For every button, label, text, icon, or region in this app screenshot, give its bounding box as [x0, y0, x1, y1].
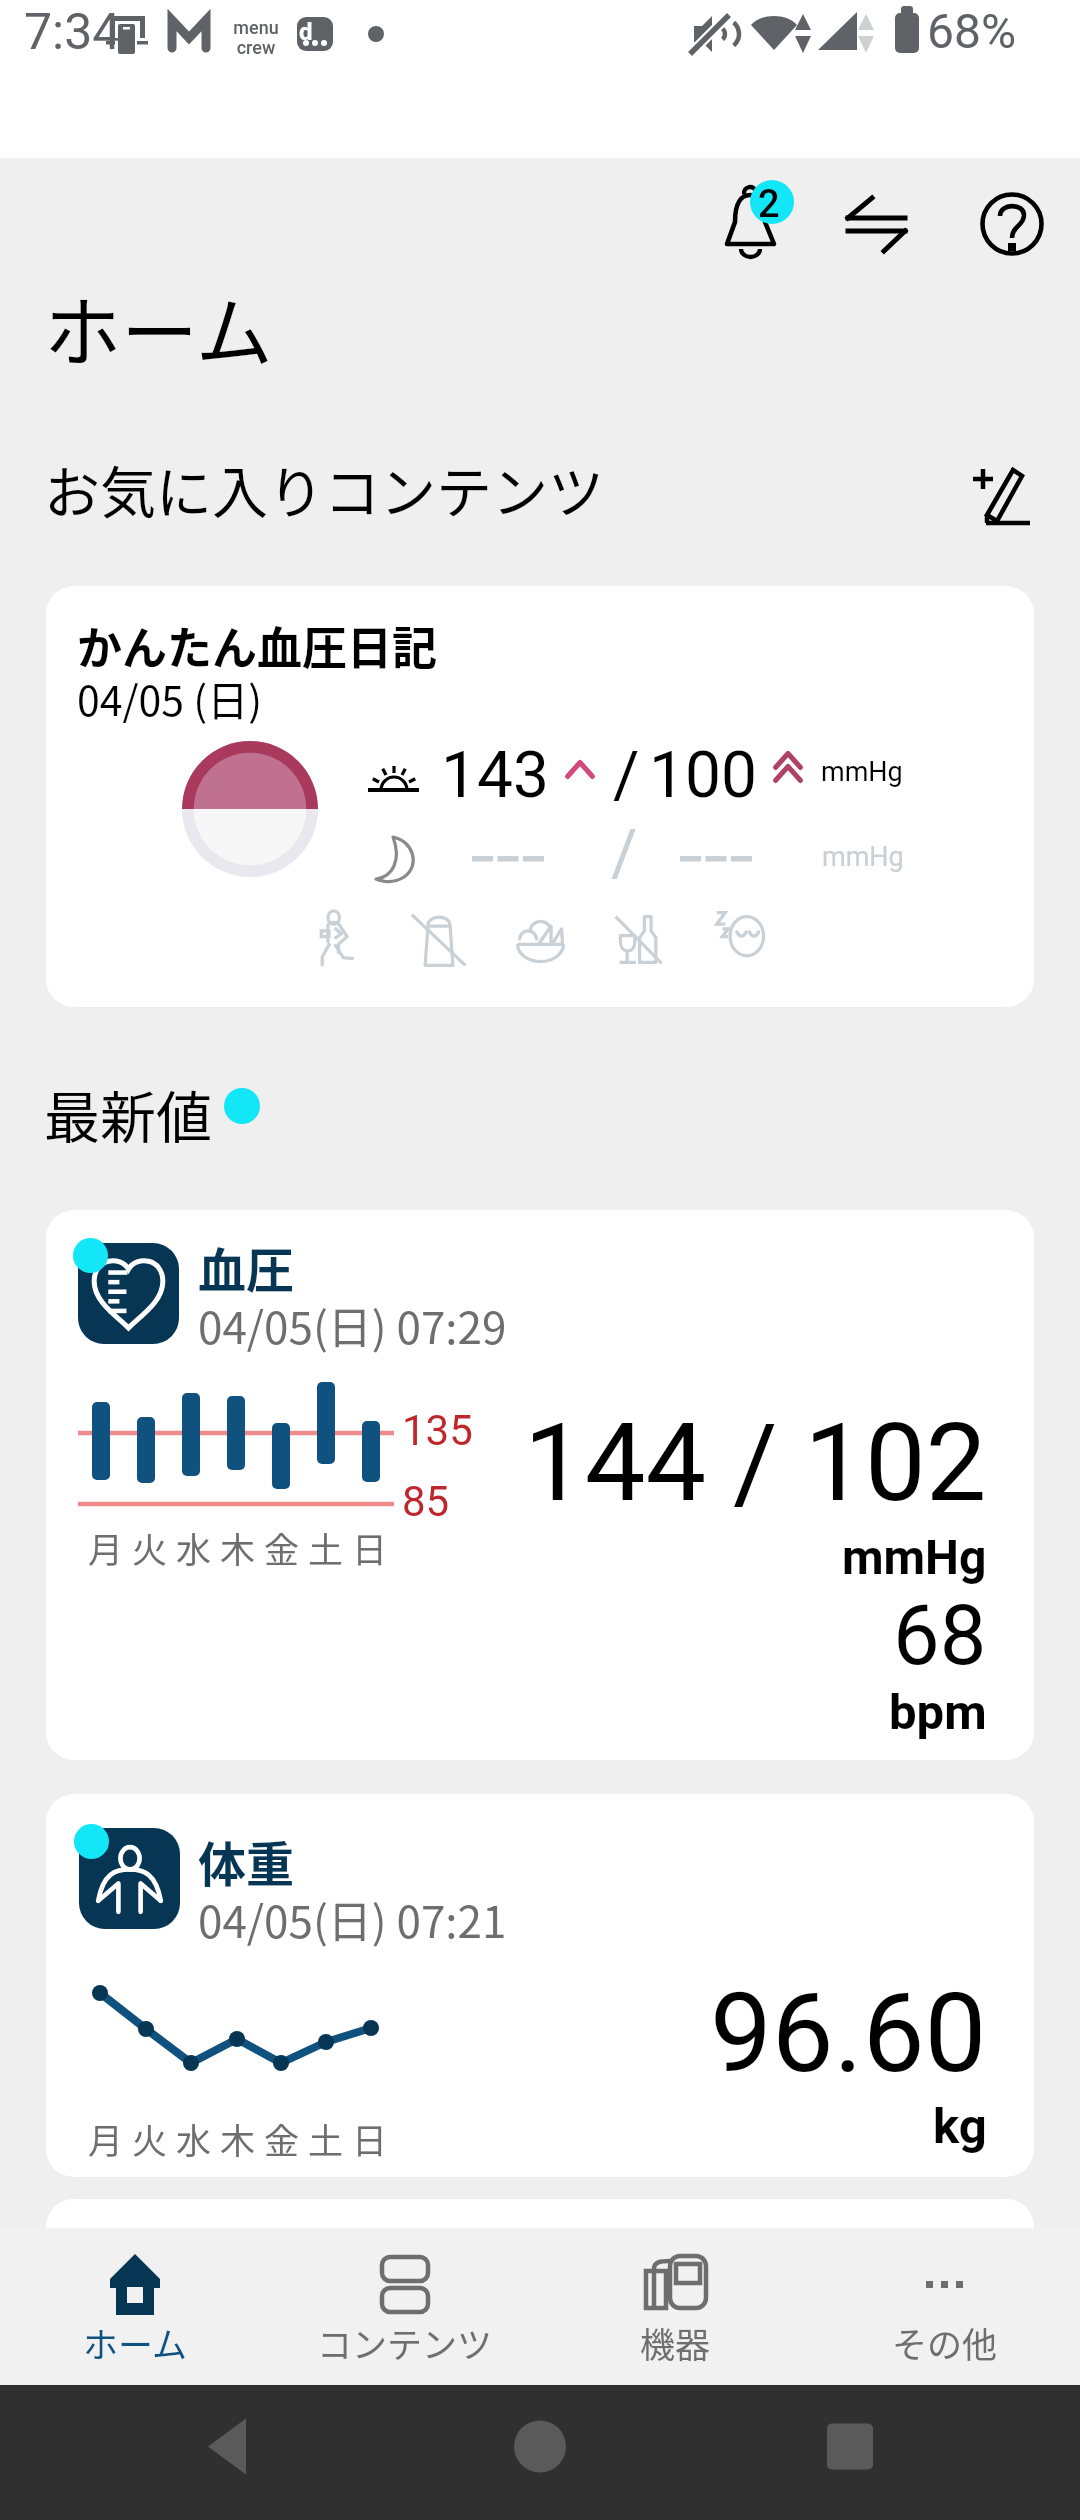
staticText: /	[613, 738, 640, 813]
staticText: 04/05 (日)	[77, 668, 262, 727]
staticText: 月	[88, 1522, 124, 1573]
button[interactable]: 機器	[540, 2228, 810, 2385]
button[interactable]: Sync	[822, 170, 930, 278]
staticText: 水	[176, 2113, 212, 2164]
staticText: 04/05(日) 07:21	[198, 1887, 507, 1951]
button[interactable]: その他	[810, 2228, 1080, 2385]
staticText: 金	[264, 2113, 300, 2164]
staticText: menu crew	[233, 17, 279, 58]
button[interactable]: Help	[958, 170, 1066, 278]
staticText: 2	[758, 182, 780, 227]
staticText: d	[299, 18, 313, 46]
button[interactable]: コンテンツ	[270, 2228, 540, 2385]
button[interactable]: かんたん血圧日記	[46, 586, 1034, 1007]
staticText: 木	[220, 2113, 256, 2164]
staticText: 火	[132, 2113, 168, 2164]
staticText: ホーム	[83, 2317, 187, 2368]
staticText: 144 / 102	[524, 1400, 987, 1527]
staticText: mmHg	[822, 841, 904, 873]
staticText: 土	[308, 1522, 344, 1573]
button[interactable]: ホーム	[0, 2228, 270, 2385]
staticText: 土	[308, 2113, 344, 2164]
staticText: 火	[132, 1522, 168, 1573]
staticText: bpm	[889, 1684, 987, 1741]
staticText: 68%	[927, 3, 1017, 59]
button[interactable]: Notifications	[702, 170, 810, 278]
staticText: その他	[892, 2317, 998, 2368]
staticText: 機器	[640, 2317, 711, 2368]
staticText: お気に入りコンテンツ	[44, 448, 604, 529]
staticText: ホーム	[44, 272, 273, 383]
staticText: /	[611, 816, 638, 891]
button[interactable]: 体重	[46, 1794, 1034, 2177]
staticText: 135	[402, 1406, 473, 1455]
staticText: 日	[352, 1522, 388, 1573]
staticText: 水	[176, 1522, 212, 1573]
staticText: mmHg	[842, 1529, 987, 1585]
staticText: 96.60	[710, 1969, 987, 2098]
staticText: コンテンツ	[317, 2317, 493, 2368]
staticText: 最新値	[44, 1073, 212, 1154]
staticText: 04/05(日) 07:29	[198, 1293, 507, 1357]
staticText: 木	[220, 1522, 256, 1573]
button[interactable]: Edit favourites	[952, 443, 1048, 539]
staticText: mmHg	[821, 756, 903, 788]
staticText: 100	[649, 738, 757, 813]
staticText: 血圧	[198, 1232, 295, 1302]
staticText: 68	[893, 1587, 987, 1684]
staticText: 金	[264, 1522, 300, 1573]
button[interactable]: 血圧	[46, 1210, 1034, 1760]
staticText: kg	[933, 2098, 987, 2155]
staticText: 体重	[198, 1826, 295, 1896]
staticText: 85	[402, 1477, 450, 1526]
staticText: かんたん血圧日記	[77, 613, 438, 678]
button[interactable]	[46, 2199, 1034, 2319]
staticText: 143	[441, 738, 549, 813]
staticText: 月	[88, 2113, 124, 2164]
staticText: 日	[352, 2113, 388, 2164]
staticText: 7:34	[24, 3, 121, 62]
